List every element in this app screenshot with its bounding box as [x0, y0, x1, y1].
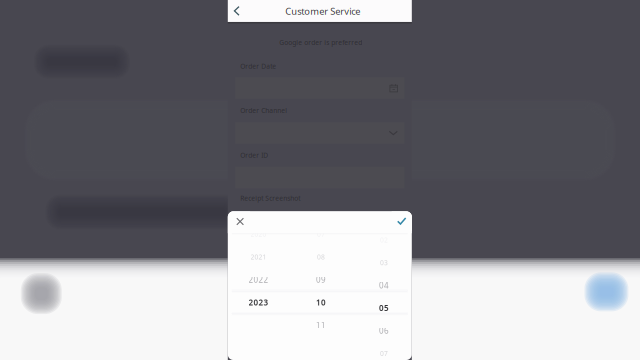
staticText: 11: [316, 320, 326, 330]
button[interactable]: Cancel: [230, 211, 250, 231]
staticText: 07: [380, 349, 388, 358]
staticText: Order Channel: [240, 106, 287, 115]
button[interactable]: Back: [228, 1, 245, 20]
button[interactable]: Confirm: [392, 211, 412, 231]
staticText: 2023: [248, 297, 268, 308]
staticText: Receipt Screenshot: [240, 194, 300, 203]
staticText: 10: [316, 297, 326, 308]
staticText: 08: [317, 252, 325, 261]
staticText: 03: [380, 258, 388, 267]
staticText: 2021: [250, 252, 266, 261]
staticText: 2020: [250, 230, 266, 239]
staticText: Order ID: [240, 151, 268, 160]
staticText: Customer Service: [285, 5, 360, 17]
staticText: Google order is preferred: [279, 38, 362, 47]
staticText: 09: [316, 274, 326, 285]
staticText: 05: [379, 303, 389, 313]
staticText: 04: [379, 280, 389, 291]
staticText: 2022: [248, 274, 268, 285]
staticText: 06: [379, 325, 389, 336]
staticText: Order Date: [240, 62, 276, 71]
